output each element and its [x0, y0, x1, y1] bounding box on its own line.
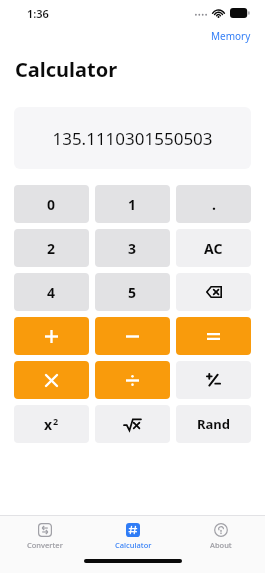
button[interactable]: Plus minus sign	[176, 361, 251, 399]
button[interactable]: 1	[95, 185, 170, 223]
staticText: x	[44, 415, 53, 434]
button[interactable]: .	[176, 185, 251, 223]
staticText: About	[210, 540, 232, 550]
button[interactable]: Square root	[95, 405, 170, 443]
button[interactable]: 0	[14, 185, 89, 223]
staticText: Converter	[27, 540, 63, 550]
staticText: .	[212, 195, 216, 214]
button[interactable]: Rand	[176, 405, 251, 443]
staticText: 5	[128, 283, 137, 302]
button[interactable]: x squared	[14, 405, 89, 443]
staticText: 1	[128, 195, 137, 214]
button[interactable]: 4	[14, 273, 89, 311]
staticText: 0	[47, 195, 56, 214]
staticText: Memory	[211, 29, 251, 43]
button[interactable]: Converter	[0, 516, 89, 556]
button[interactable]: Divide	[95, 361, 170, 399]
button[interactable]: Plus	[14, 317, 89, 355]
staticText: Rand	[197, 415, 230, 433]
staticText: 2	[47, 239, 56, 258]
staticText: 1:36	[27, 6, 49, 21]
staticText: 4	[47, 283, 56, 302]
button[interactable]: Multiply	[14, 361, 89, 399]
staticText: Calculator	[15, 56, 118, 83]
button[interactable]: Minus	[95, 317, 170, 355]
staticText: AC	[204, 239, 223, 258]
button[interactable]: Backspace	[176, 273, 251, 311]
staticText: 135.1110301550503	[52, 127, 213, 150]
button[interactable]: 3	[95, 229, 170, 267]
button[interactable]: Memory	[208, 27, 254, 45]
staticText: 3	[128, 239, 137, 258]
button[interactable]: About	[177, 516, 265, 556]
button[interactable]: 5	[95, 273, 170, 311]
staticText: Calculator	[115, 540, 152, 550]
button[interactable]: Calculator	[89, 516, 177, 556]
staticText: 2	[53, 415, 59, 427]
button[interactable]: AC	[176, 229, 251, 267]
button[interactable]: 2	[14, 229, 89, 267]
button[interactable]: Equals	[176, 317, 251, 355]
